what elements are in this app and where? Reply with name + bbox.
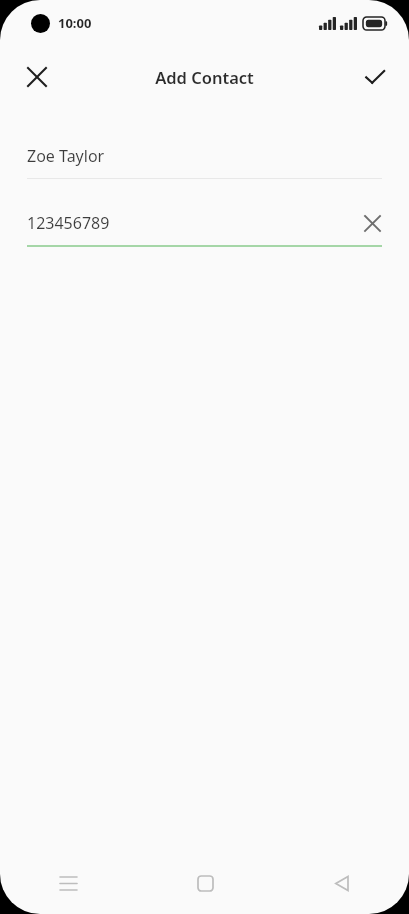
staticText: 10:00 <box>58 14 92 32</box>
button[interactable]: Zoe Taylor <box>0 134 409 179</box>
button[interactable]: Save contact <box>354 56 396 98</box>
button[interactable]: Home <box>137 852 273 914</box>
button[interactable]: Back <box>273 852 409 914</box>
button[interactable]: Clear phone number <box>355 206 389 240</box>
button[interactable]: 123456789 <box>0 201 409 247</box>
staticText: 123456789 <box>27 212 110 234</box>
button[interactable]: Close <box>16 56 58 98</box>
staticText: Add Contact <box>155 66 254 88</box>
staticText: Zoe Taylor <box>27 145 105 167</box>
button[interactable]: Recent apps <box>0 852 137 914</box>
